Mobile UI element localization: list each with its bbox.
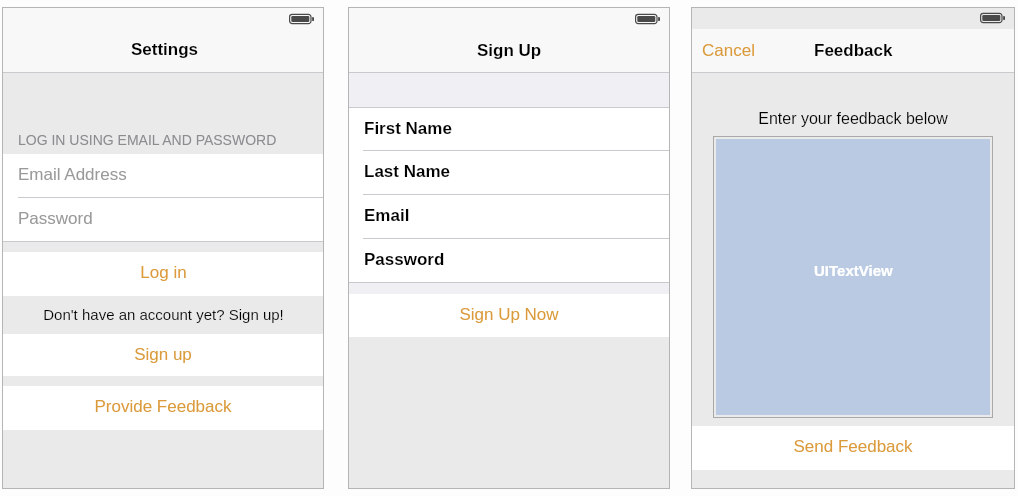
staticText: Log in [140,263,187,282]
button[interactable]: Password [2,198,324,241]
staticText: First Name [364,119,452,138]
other: Battery status [635,12,661,26]
button[interactable]: First Name [348,108,670,150]
staticText: Last Name [364,162,450,181]
staticText: Don't have an account yet? Sign up! [43,306,284,323]
staticText: Enter your feedback below [691,110,1015,128]
button[interactable]: UITextView [716,139,990,415]
button[interactable]: Sign up [2,334,324,376]
staticText: Send Feedback [793,437,913,456]
button[interactable]: Email Address [2,154,324,197]
staticText: Password [18,209,93,228]
other: Battery status [980,11,1006,25]
staticText: Provide Feedback [94,397,232,416]
button[interactable]: Email [348,195,670,238]
staticText: Password [364,250,445,269]
staticText: Email [364,206,410,225]
button[interactable]: Sign Up Now [348,294,670,337]
button[interactable]: Cancel [691,29,764,72]
staticText: Sign Up [477,41,542,60]
staticText: LOG IN USING EMAIL AND PASSWORD [18,132,277,148]
other: Battery status [289,12,315,26]
staticText: Sign up [134,345,192,364]
staticText: Feedback [814,41,893,60]
button[interactable]: Send Feedback [691,426,1015,470]
staticText: Settings [131,40,199,59]
staticText: Sign Up Now [459,305,559,324]
button[interactable]: Last Name [348,151,670,194]
button[interactable]: Log in [2,252,324,296]
button[interactable]: Don't have an account yet? Sign up! [2,296,324,334]
button[interactable]: Password [348,239,670,282]
staticText: Email Address [18,165,127,184]
staticText: UITextView [814,262,893,279]
button[interactable]: Provide Feedback [2,386,324,430]
staticText: Cancel [702,41,755,60]
